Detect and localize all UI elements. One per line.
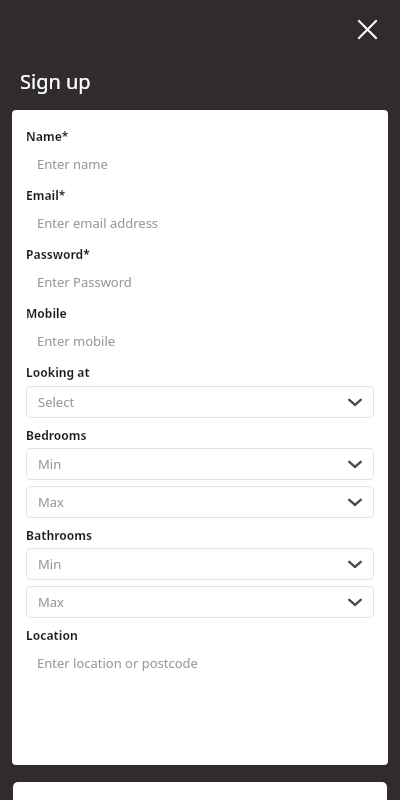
button[interactable]: Max (26, 586, 374, 618)
button[interactable]: Select (26, 386, 374, 418)
staticText: Enter Password (37, 273, 132, 291)
staticText: Email* (26, 187, 66, 203)
button[interactable]: Min (26, 448, 374, 480)
button[interactable]: Max (26, 486, 374, 518)
staticText: Enter location or postcode (37, 654, 198, 672)
button[interactable]: Enter name (26, 147, 374, 181)
staticText: Mobile (26, 305, 67, 321)
button[interactable]: Close (347, 9, 387, 49)
staticText: Name* (26, 128, 69, 144)
staticText: Enter mobile (37, 332, 116, 350)
button[interactable]: Enter email address (26, 206, 374, 240)
staticText: Bedrooms (26, 427, 87, 443)
button[interactable]: Enter location or postcode (26, 646, 374, 680)
staticText: Max (38, 593, 346, 611)
staticText: Looking at (26, 364, 90, 380)
staticText: Enter email address (37, 214, 159, 232)
staticText: Select (38, 393, 346, 411)
staticText: Min (38, 555, 346, 573)
button[interactable]: Min (26, 548, 374, 580)
staticText: Enter name (37, 155, 108, 173)
staticText: Max (38, 493, 346, 511)
button[interactable]: Enter Password (26, 265, 374, 299)
staticText: Location (26, 627, 78, 643)
staticText: Bathrooms (26, 527, 93, 543)
staticText: Min (38, 455, 346, 473)
button[interactable]: Enter mobile (26, 324, 374, 358)
button[interactable] (13, 782, 387, 800)
staticText: Password* (26, 246, 90, 262)
staticText: Sign up (20, 68, 91, 95)
